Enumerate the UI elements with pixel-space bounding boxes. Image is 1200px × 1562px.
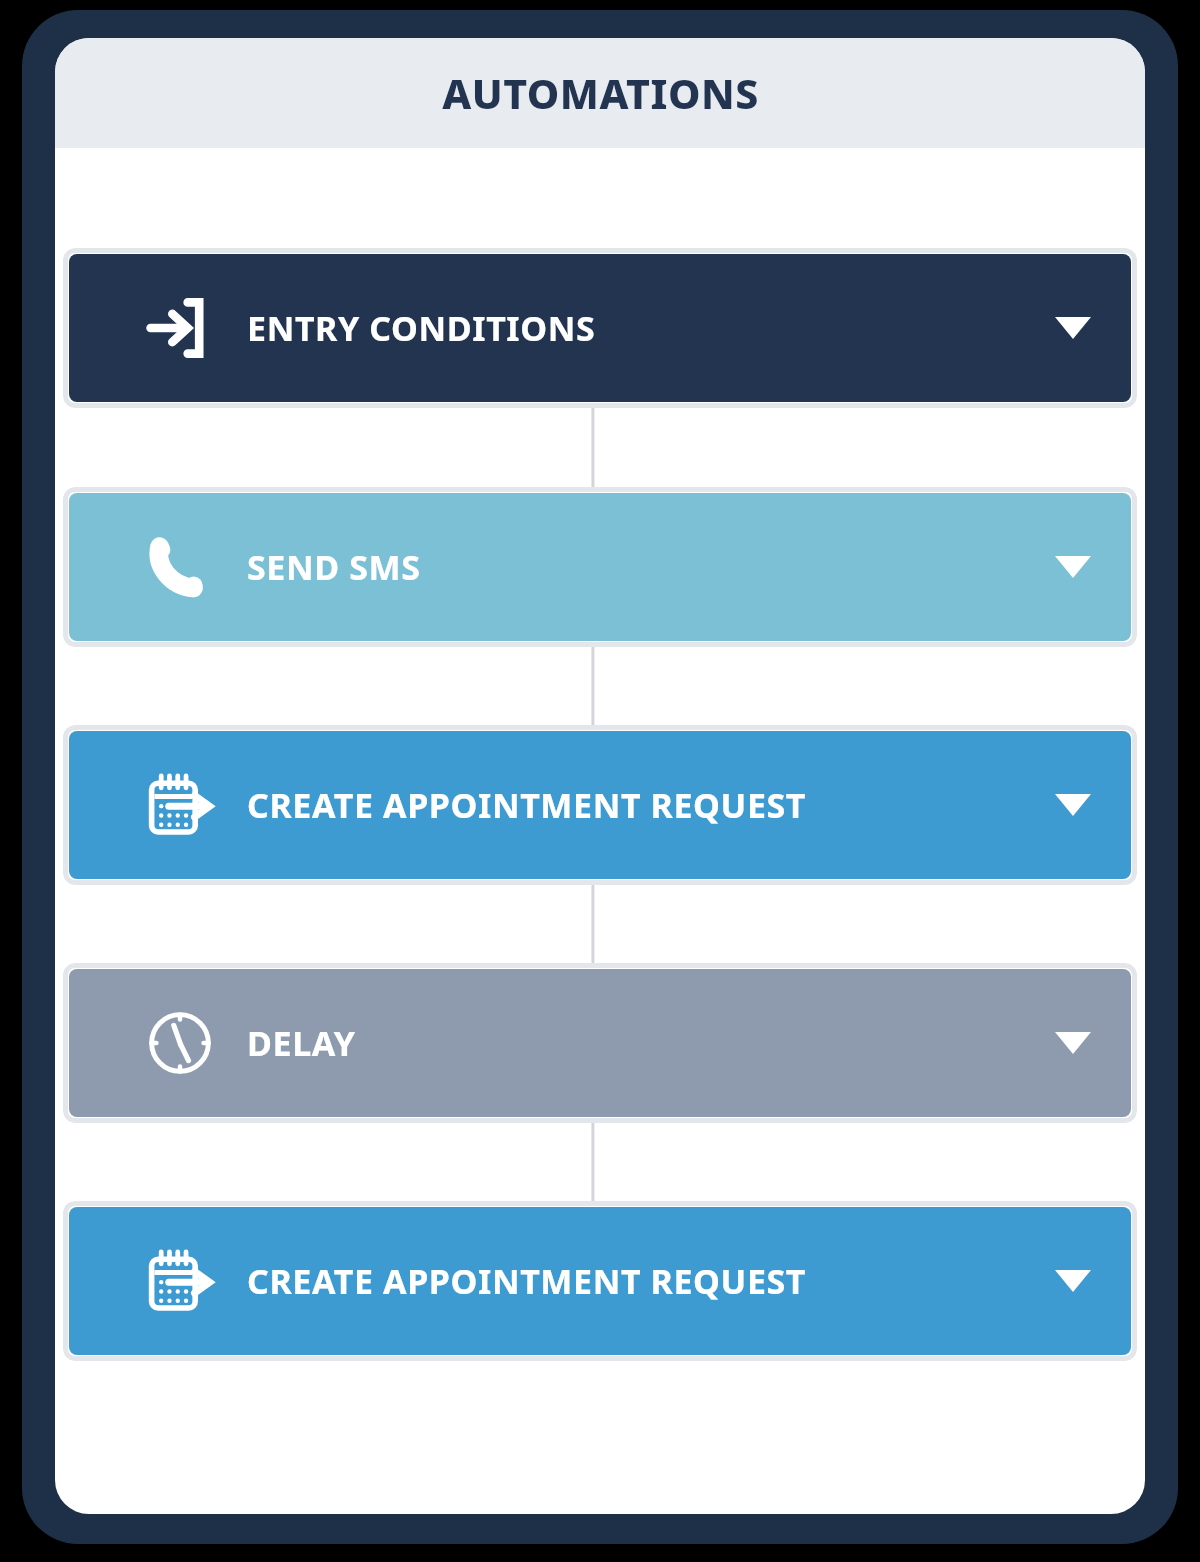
button[interactable]: CREATE APPOINTMENT REQUEST — [69, 731, 1131, 879]
button[interactable]: Expand ENTRY CONDITIONS — [1045, 300, 1101, 356]
staticText: SEND SMS — [247, 544, 421, 590]
button[interactable]: Expand CREATE APPOINTMENT REQUEST — [1045, 1253, 1101, 1309]
button[interactable]: CREATE APPOINTMENT REQUEST — [69, 1207, 1131, 1355]
staticText: CREATE APPOINTMENT REQUEST — [247, 782, 807, 828]
staticText: DELAY — [247, 1020, 356, 1066]
button[interactable]: SEND SMS — [69, 493, 1131, 641]
button[interactable]: DELAY — [69, 969, 1131, 1117]
button[interactable]: Expand CREATE APPOINTMENT REQUEST — [1045, 777, 1101, 833]
button[interactable]: Expand DELAY — [1045, 1015, 1101, 1071]
staticText: CREATE APPOINTMENT REQUEST — [247, 1258, 807, 1304]
staticText: ENTRY CONDITIONS — [247, 305, 596, 351]
staticText: AUTOMATIONS — [442, 65, 759, 121]
button[interactable]: Expand SEND SMS — [1045, 539, 1101, 595]
button[interactable]: ENTRY CONDITIONS — [69, 254, 1131, 402]
